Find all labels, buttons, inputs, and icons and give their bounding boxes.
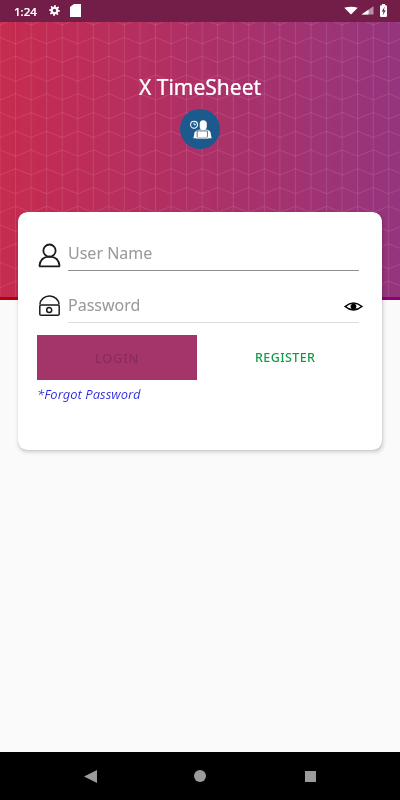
button[interactable]: *Forgot Password xyxy=(37,385,141,403)
button[interactable]: REGISTER xyxy=(223,335,348,380)
staticText: User Name xyxy=(68,242,153,264)
staticText: Password xyxy=(68,294,141,316)
button[interactable]: Recent apps xyxy=(290,756,330,796)
button[interactable]: Back xyxy=(70,756,110,796)
staticText: LOGIN xyxy=(95,349,140,367)
button[interactable]: Home xyxy=(180,756,220,796)
button[interactable]: Show password xyxy=(341,294,365,318)
staticText: *Forgot Password xyxy=(37,385,141,403)
staticText: 1:24 xyxy=(14,4,37,20)
staticText: REGISTER xyxy=(255,349,316,366)
staticText: X TimeSheet xyxy=(139,73,262,102)
button[interactable]: X TimeSheet logo xyxy=(180,109,220,149)
